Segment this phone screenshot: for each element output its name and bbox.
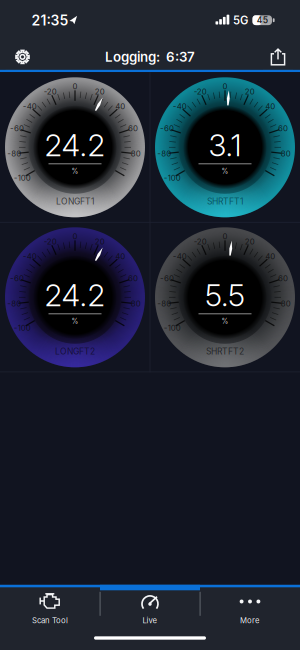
staticText: -80 [7,299,21,308]
staticText: -40 [23,102,37,111]
staticText: -100 [14,173,31,182]
staticText: More [240,616,260,625]
staticText: -40 [23,252,37,261]
staticText: SHRTFT2 [206,346,244,356]
staticText: 0 [222,231,227,241]
staticText: Live [142,616,157,625]
staticText: LONGFT1 [56,196,94,206]
staticText: 20 [95,237,105,246]
staticText: -60 [160,124,174,133]
staticText: 40 [115,252,125,261]
staticText: -60 [10,274,24,283]
staticText: 0 [222,81,227,91]
staticText: -60 [10,124,24,133]
staticText: -20 [194,87,207,96]
staticText: 5G [233,14,248,27]
staticText: -80 [157,149,171,158]
staticText: Scan Tool [32,616,68,625]
staticText: Logging: 6:37 [105,49,195,65]
staticText: 5.5 [205,277,245,313]
staticText: -100 [164,173,181,182]
staticText: 24.2 [44,277,105,313]
staticText: 24.2 [44,127,105,163]
staticText: 80 [281,149,291,158]
staticText: -80 [7,149,21,158]
staticText: 40 [265,252,275,261]
staticText: -40 [173,102,187,111]
staticText: LONGFT2 [55,346,95,356]
staticText: 20 [245,87,255,96]
staticText: 60 [278,274,288,283]
staticText: % [71,167,78,175]
staticText: 60 [278,124,288,133]
staticText: -40 [173,252,187,261]
button[interactable]: Live [100,585,200,650]
staticText: % [71,317,78,325]
staticText: -60 [160,274,174,283]
staticText: % [221,317,228,325]
staticText: 40 [115,102,125,111]
staticText: -80 [157,299,171,308]
staticText: -20 [44,237,57,246]
staticText: 20 [95,87,105,96]
staticText: 21:35 [31,12,68,29]
staticText: 80 [131,149,141,158]
staticText: -100 [14,323,31,332]
staticText: 80 [281,299,291,308]
staticText: -100 [164,323,181,332]
staticText: 20 [245,237,255,246]
button[interactable]: More [200,585,300,650]
staticText: 45 [257,15,268,25]
staticText: 60 [128,274,138,283]
button[interactable]: Share [263,44,293,70]
button[interactable]: Scan Tool [0,585,100,650]
staticText: -20 [44,87,57,96]
button[interactable]: Settings [5,44,39,70]
staticText: -20 [194,237,207,246]
staticText: 3.1 [208,127,241,163]
staticText: 40 [265,102,275,111]
staticText: 0 [72,81,77,91]
staticText: 0 [72,231,77,241]
staticText: 80 [131,299,141,308]
staticText: SHRTFT1 [207,196,243,206]
staticText: % [221,167,228,175]
staticText: 60 [128,124,138,133]
